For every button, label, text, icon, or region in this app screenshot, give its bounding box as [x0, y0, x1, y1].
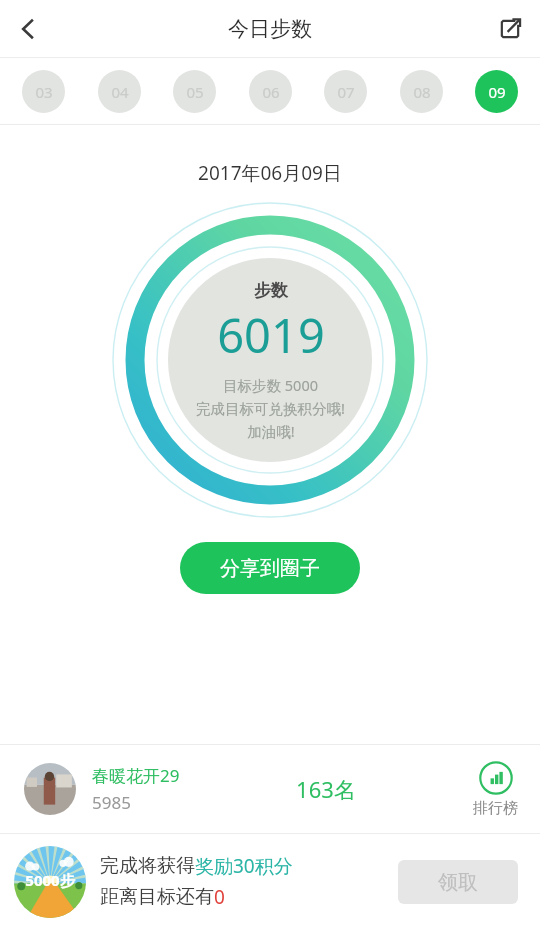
- staticText: 0: [214, 884, 225, 910]
- staticText: 08: [413, 82, 431, 102]
- button[interactable]: 06: [249, 70, 292, 113]
- staticText: 6019: [217, 303, 325, 367]
- staticText: 09: [488, 82, 506, 102]
- staticText: 分享到圈子: [220, 556, 320, 581]
- button[interactable]: 分享到圈子: [180, 542, 360, 594]
- button[interactable]: 08: [400, 70, 443, 113]
- staticText: 04: [111, 82, 129, 102]
- button[interactable]: 07: [324, 70, 367, 113]
- staticText: 2017年06月09日: [198, 160, 342, 186]
- staticText: 加油哦!: [247, 421, 295, 441]
- button[interactable]: 领取: [398, 860, 518, 904]
- staticText: 03: [35, 82, 53, 102]
- staticText: 163名: [296, 774, 356, 804]
- staticText: 完成目标可兑换积分哦!: [196, 398, 345, 418]
- button[interactable]: 09: [475, 70, 518, 113]
- staticText: 5000步: [25, 870, 75, 890]
- staticText: 完成将获得: [100, 854, 195, 878]
- button[interactable]: Share: [486, 5, 534, 53]
- staticText: 步数: [254, 280, 288, 301]
- staticText: 今日步数: [228, 16, 312, 42]
- staticText: 排行榜: [473, 799, 518, 818]
- staticText: 5985: [92, 791, 131, 814]
- button[interactable]: Back: [4, 5, 52, 53]
- staticText: 距离目标还有: [100, 885, 214, 909]
- staticText: 领取: [438, 870, 478, 895]
- button[interactable]: 04: [98, 70, 141, 113]
- staticText: 07: [337, 82, 355, 102]
- staticText: 目标步数 5000: [223, 375, 318, 395]
- staticText: 春暖花开29: [92, 764, 180, 787]
- button[interactable]: 03: [22, 70, 65, 113]
- button[interactable]: 春暖花开29: [0, 745, 540, 833]
- button[interactable]: 05: [173, 70, 216, 113]
- staticText: 06: [262, 82, 280, 102]
- staticText: 05: [186, 82, 204, 102]
- staticText: 奖励30积分: [195, 853, 293, 879]
